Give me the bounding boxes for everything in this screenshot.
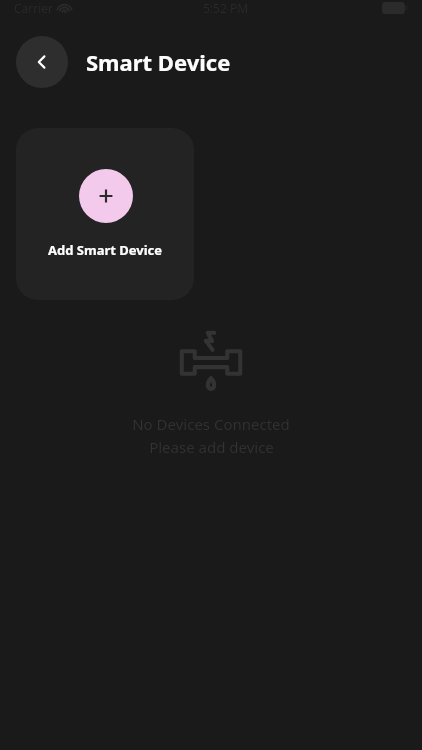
staticText: 5:52 PM xyxy=(203,0,249,16)
staticText: No Devices Connected xyxy=(132,414,290,434)
button[interactable]: Add Smart Device xyxy=(16,128,194,300)
staticText: Carrier xyxy=(14,0,54,16)
button[interactable]: Back xyxy=(16,36,68,88)
staticText: Smart Device xyxy=(86,47,231,77)
staticText: Please add device xyxy=(149,437,274,457)
staticText: Add Smart Device xyxy=(48,241,163,259)
